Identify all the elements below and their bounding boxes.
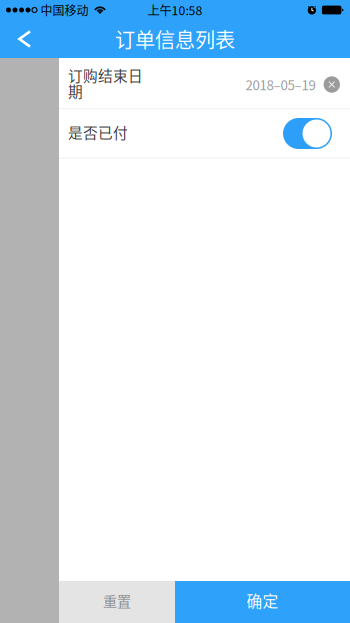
button[interactable]: 订购结束日	[59, 58, 350, 108]
staticText: 确定	[246, 589, 278, 612]
staticText: 重置	[103, 590, 131, 611]
button[interactable]: 确定	[175, 581, 350, 623]
staticText: 订购结束日	[68, 64, 143, 86]
button[interactable]: 是否已付	[283, 118, 332, 149]
staticText: 是否已付	[68, 121, 128, 143]
button[interactable]: 返回	[0, 20, 43, 58]
staticText: 订单信息列表	[115, 24, 235, 54]
staticText: 上午10:58	[147, 1, 202, 19]
staticText: 期	[68, 80, 83, 101]
staticText: 2018–05–19	[246, 75, 316, 94]
staticText: 中国移动	[40, 1, 88, 19]
button[interactable]: 重置	[59, 581, 175, 623]
